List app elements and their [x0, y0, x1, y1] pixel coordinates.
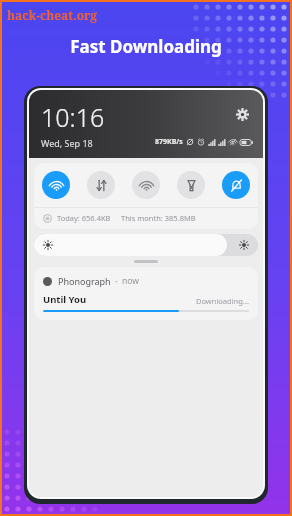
- staticText: Phonograph: [58, 275, 111, 287]
- button[interactable]: Mute: [222, 171, 250, 199]
- button[interactable]: Hotspot: [132, 171, 160, 199]
- staticText: 10:16: [41, 100, 105, 134]
- staticText: hack-cheat.org: [7, 7, 98, 23]
- staticText: ·: [115, 275, 118, 287]
- staticText: Downloading...: [196, 296, 249, 306]
- button[interactable]: Flashlight: [177, 171, 205, 199]
- button[interactable]: Wi-Fi: [42, 171, 70, 199]
- staticText: 879KB/s: [155, 137, 183, 147]
- staticText: now: [122, 275, 139, 287]
- staticText: This month: 385.8MB: [121, 213, 196, 223]
- button[interactable]: Settings: [232, 104, 252, 124]
- button[interactable]: Brightness: [34, 234, 258, 256]
- button[interactable]: Phonograph: [34, 267, 258, 320]
- staticText: Fast Downloading: [2, 35, 290, 58]
- button[interactable]: Mobile data: [87, 171, 115, 199]
- staticText: Today: 656.4KB: [57, 213, 111, 223]
- staticText: Wed, Sep 18: [41, 137, 93, 149]
- staticText: Until You: [43, 293, 87, 306]
